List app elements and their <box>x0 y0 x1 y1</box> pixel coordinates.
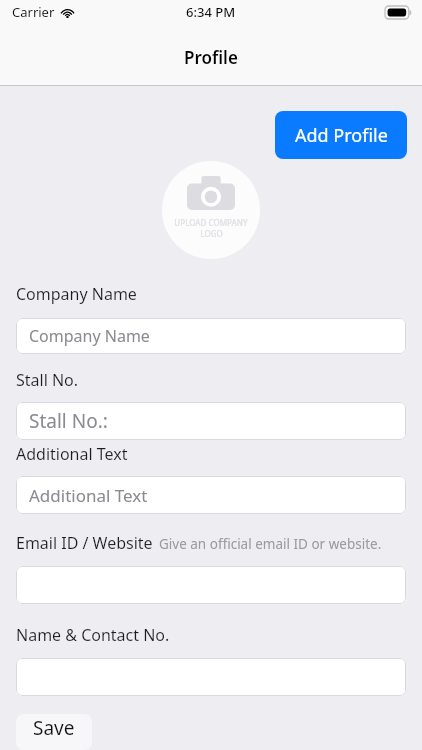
button[interactable] <box>16 566 406 604</box>
button[interactable]: Upload company logo <box>162 161 260 259</box>
staticText: Name & Contact No. <box>16 624 170 646</box>
staticText: Stall No. <box>16 369 79 391</box>
button[interactable]: Company Name <box>16 318 406 354</box>
button[interactable]: Add Profile <box>275 111 407 159</box>
staticText: Profile <box>184 46 238 69</box>
staticText: Company Name <box>29 325 150 347</box>
staticText: Email ID / Website <box>16 532 153 554</box>
staticText: Additional Text <box>29 484 148 507</box>
staticText: 6:34 PM <box>186 3 236 21</box>
staticText: Give an official email ID or website. <box>159 535 382 553</box>
button[interactable]: Stall No.: <box>16 402 406 440</box>
staticText: Carrier <box>12 3 55 21</box>
staticText: UPLOAD COMPANY <box>174 217 248 228</box>
button[interactable] <box>16 658 406 696</box>
staticText: Save <box>33 715 75 741</box>
staticText: Additional Text <box>16 443 128 465</box>
staticText: LOGO <box>200 228 223 239</box>
staticText: Company Name <box>16 283 137 305</box>
button[interactable]: Additional Text <box>16 476 406 514</box>
staticText: Stall No.: <box>29 408 108 434</box>
staticText: Add Profile <box>295 123 388 148</box>
button[interactable]: Save <box>16 714 92 750</box>
